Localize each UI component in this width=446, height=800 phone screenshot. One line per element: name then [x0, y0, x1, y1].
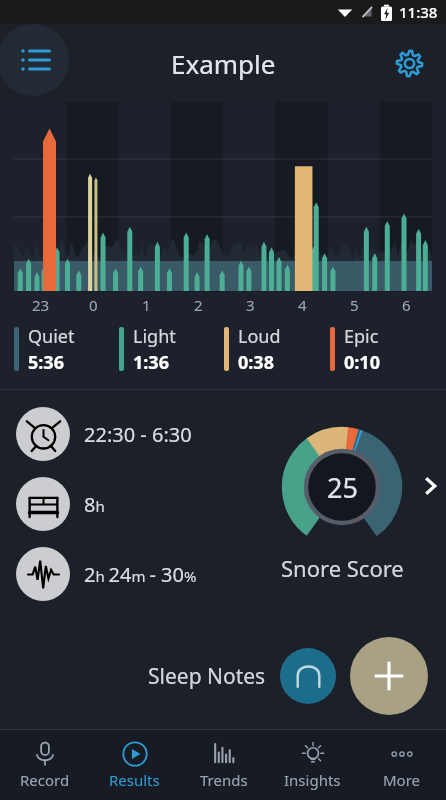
staticText: 0:10: [344, 350, 380, 375]
staticText: 2: [194, 295, 203, 315]
staticText: Insights: [284, 770, 341, 790]
button[interactable]: Menu: [0, 24, 69, 96]
staticText: 2h 24m - 30%: [84, 561, 197, 588]
staticText: Epic: [344, 324, 379, 349]
staticText: 5:36: [28, 350, 64, 375]
staticText: 11:38: [399, 2, 438, 22]
button[interactable]: Sleep Notes: [148, 648, 336, 704]
staticText: Snore Score: [281, 553, 404, 583]
button[interactable]: 2h 24m - 30%: [16, 547, 197, 601]
button[interactable]: 8h: [16, 477, 105, 531]
staticText: Results: [109, 770, 160, 790]
staticText: 3: [246, 295, 255, 315]
other: Next: [418, 474, 442, 498]
button[interactable]: 22:30 - 6:30: [16, 407, 192, 461]
button[interactable]: Results: [90, 730, 179, 800]
staticText: 8h: [84, 491, 105, 518]
staticText: Quiet: [28, 324, 75, 349]
button[interactable]: Light: [119, 324, 224, 375]
button[interactable]: More: [357, 730, 446, 800]
staticText: Example: [171, 46, 276, 81]
button[interactable]: Quiet: [14, 324, 119, 375]
staticText: Sleep Notes: [148, 662, 266, 691]
staticText: 1:36: [133, 350, 169, 375]
button[interactable]: Epic: [330, 324, 436, 375]
staticText: 1: [142, 295, 151, 315]
staticText: 0:38: [238, 350, 274, 375]
button[interactable]: Loud: [224, 324, 330, 375]
staticText: 5: [350, 295, 359, 315]
button[interactable]: Insights: [268, 730, 357, 800]
staticText: Record: [20, 770, 70, 790]
staticText: Loud: [238, 324, 281, 349]
staticText: 23: [32, 295, 50, 315]
button[interactable]: Settings: [386, 40, 432, 86]
staticText: 22:30 - 6:30: [84, 421, 192, 448]
staticText: 4: [298, 295, 307, 315]
staticText: 25: [327, 469, 358, 506]
staticText: Trends: [200, 770, 248, 790]
button[interactable]: 25: [250, 390, 446, 618]
button[interactable]: Record: [0, 730, 90, 800]
staticText: Light: [133, 324, 176, 349]
button[interactable]: Trends: [179, 730, 268, 800]
staticText: 0: [89, 295, 98, 315]
staticText: More: [383, 770, 421, 790]
staticText: 6: [402, 295, 411, 315]
button[interactable]: Add: [350, 637, 428, 715]
